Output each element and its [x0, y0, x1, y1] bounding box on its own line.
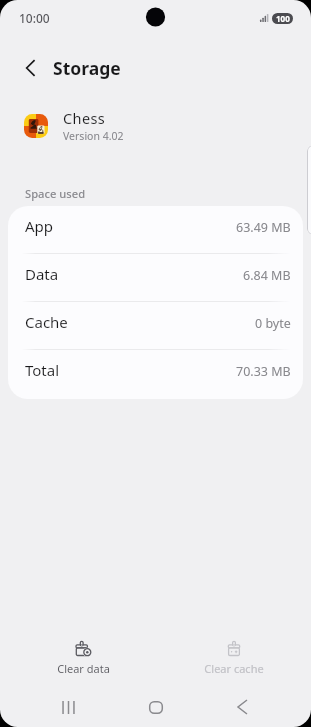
button[interactable]: Recent apps: [50, 689, 87, 725]
button[interactable]: Data: [8, 254, 303, 302]
staticText: Version 4.02: [63, 129, 124, 143]
button[interactable]: Back: [17, 54, 45, 82]
staticText: App: [25, 216, 54, 236]
staticText: 6.84 MB: [243, 267, 291, 284]
button[interactable]: Clear data: [38, 640, 128, 676]
staticText: 63.49 MB: [236, 219, 291, 236]
staticText: Space used: [25, 186, 86, 201]
button[interactable]: Home: [137, 689, 174, 725]
staticText: 70.33 MB: [236, 363, 291, 380]
staticText: Data: [25, 264, 59, 284]
staticText: Clear cache: [204, 661, 264, 676]
staticText: Cache: [25, 312, 68, 332]
button[interactable]: Total: [8, 350, 303, 398]
button[interactable]: App: [8, 206, 303, 254]
staticText: Chess: [63, 108, 106, 128]
button[interactable]: Cache: [8, 302, 303, 350]
staticText: 10:00: [19, 10, 50, 26]
staticText: Clear data: [57, 661, 110, 676]
button[interactable]: Clear cache: [189, 640, 279, 676]
staticText: Storage: [53, 56, 121, 80]
staticText: 100: [276, 13, 290, 24]
button[interactable]: Back: [224, 689, 261, 725]
staticText: Total: [25, 360, 60, 380]
staticText: 0 byte: [255, 315, 291, 332]
